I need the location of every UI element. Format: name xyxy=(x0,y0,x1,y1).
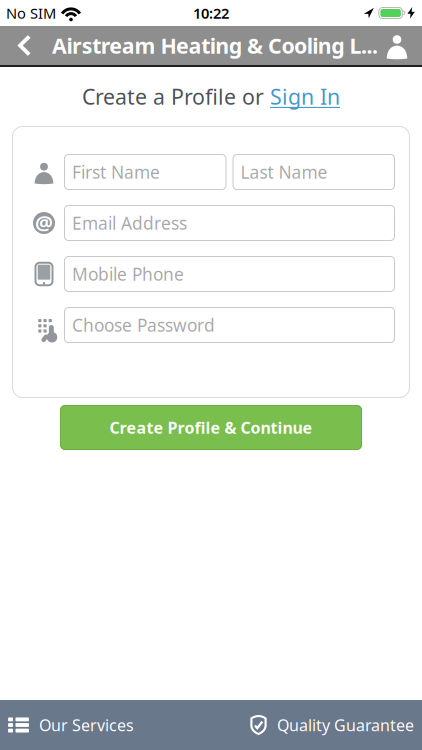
staticText: Airstream Heating & Cooling L... xyxy=(52,31,378,60)
staticText: @ xyxy=(35,209,53,236)
button[interactable]: Sign In xyxy=(270,82,340,111)
staticText: First Name xyxy=(72,160,160,183)
button[interactable]: Create Profile & Continue xyxy=(60,405,362,450)
button[interactable]: Our Services xyxy=(0,714,134,736)
staticText: Quality Guarantee xyxy=(277,714,414,736)
staticText: Sign In xyxy=(270,82,340,111)
button[interactable]: Account xyxy=(386,32,422,58)
staticText: Mobile Phone xyxy=(72,262,184,285)
staticText: Last Name xyxy=(240,160,327,183)
staticText: Create Profile & Continue xyxy=(109,417,312,438)
staticText: Our Services xyxy=(39,714,134,736)
staticText: Email Address xyxy=(72,211,187,234)
staticText: 10:22 xyxy=(193,3,229,23)
button[interactable]: Back xyxy=(0,34,31,56)
staticText: No SIM xyxy=(6,3,56,23)
staticText: Choose Password xyxy=(72,313,215,336)
button[interactable]: Quality Guarantee xyxy=(250,714,422,736)
staticText: Create a Profile or xyxy=(82,82,270,111)
